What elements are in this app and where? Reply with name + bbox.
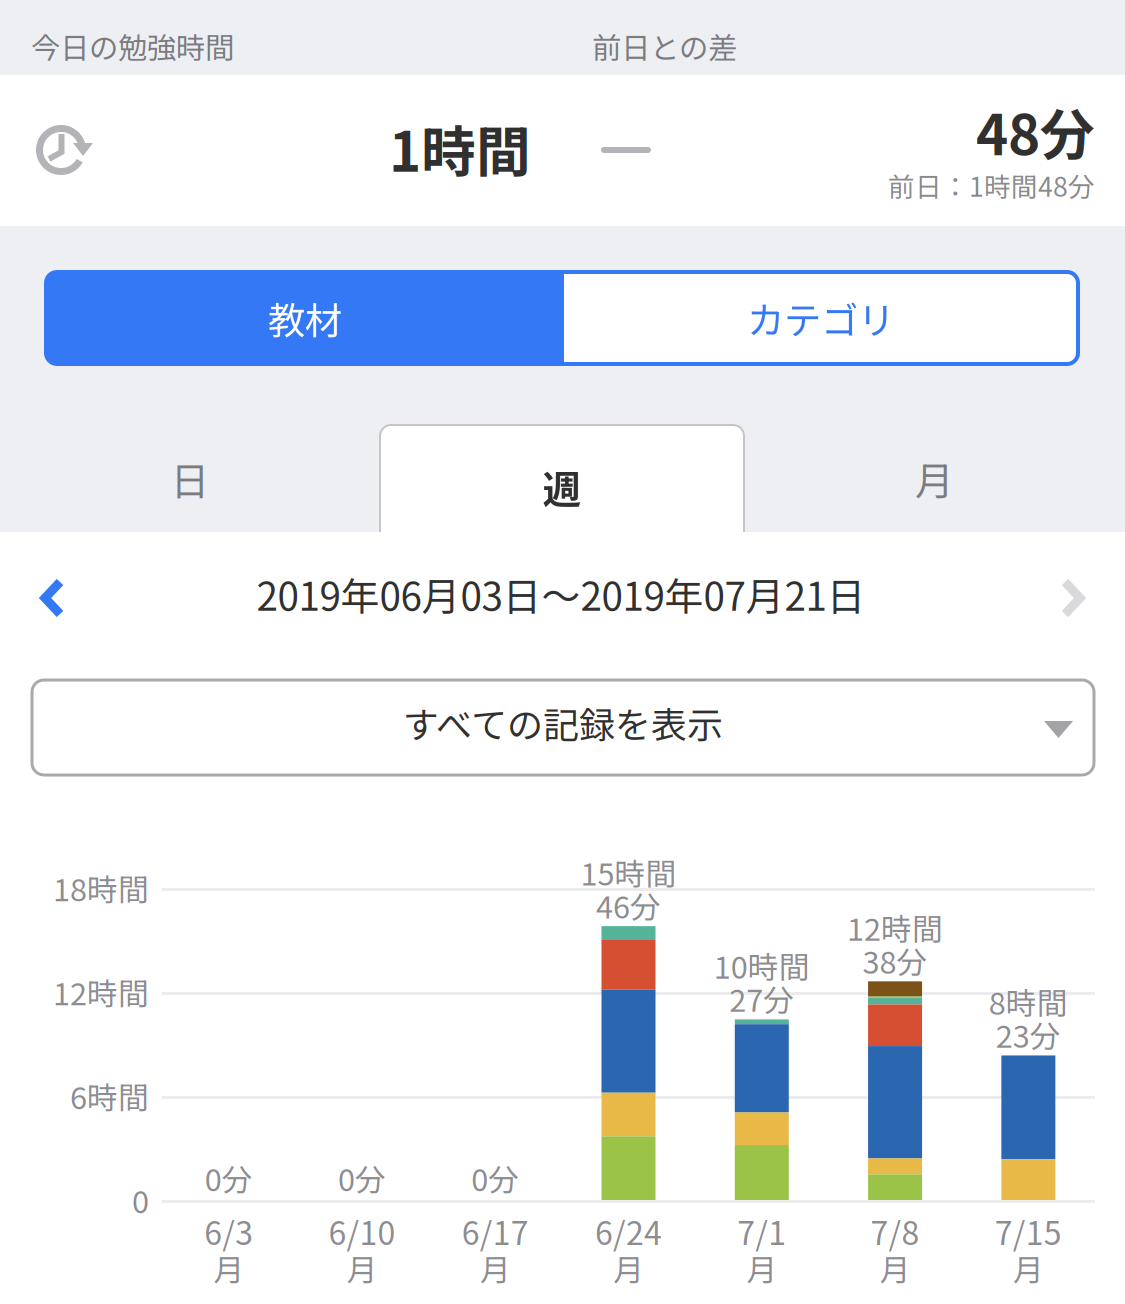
button[interactable]: カテゴリ xyxy=(564,272,1078,364)
staticText: 月 xyxy=(915,450,954,506)
staticText: 0分 xyxy=(471,1156,519,1200)
staticText: 18時間 xyxy=(53,866,149,910)
staticText: 10時間 xyxy=(714,943,810,988)
staticText: 0 xyxy=(132,1178,149,1222)
staticText: 2019年06月03日〜2019年07月21日 xyxy=(256,566,865,622)
staticText: 月 xyxy=(746,1246,777,1290)
staticText: 月 xyxy=(1013,1246,1044,1290)
staticText: 今日の勉強時間 xyxy=(31,25,234,67)
staticText: 46分 xyxy=(596,883,661,927)
staticText: 0分 xyxy=(338,1156,386,1200)
staticText: 1時間 xyxy=(389,108,531,188)
staticText: 38分 xyxy=(863,938,928,982)
staticText: 12時間 xyxy=(53,970,149,1014)
staticText: 48分 xyxy=(976,91,1095,171)
staticText: カテゴリ xyxy=(747,291,895,345)
staticText: 週 xyxy=(542,459,581,515)
staticText: 月 xyxy=(480,1246,511,1290)
button[interactable]: 日 xyxy=(0,425,380,532)
staticText: 7/8 xyxy=(871,1208,920,1254)
staticText: 6時間 xyxy=(70,1074,149,1118)
staticText: 0分 xyxy=(205,1156,253,1200)
staticText: すべての記録を表示 xyxy=(403,696,723,748)
staticText: 8時間 xyxy=(989,979,1068,1024)
staticText: 前日との差 xyxy=(592,25,737,67)
button[interactable]: 次の期間 xyxy=(1026,553,1118,643)
button[interactable]: 教材 xyxy=(46,272,564,364)
staticText: 教材 xyxy=(268,291,342,345)
button[interactable]: すべての記録を表示 xyxy=(32,680,1094,775)
staticText: 7/15 xyxy=(995,1208,1062,1254)
staticText: 6/3 xyxy=(204,1208,253,1254)
staticText: 7/1 xyxy=(737,1208,786,1254)
staticText: 27分 xyxy=(729,976,794,1021)
button[interactable]: 月 xyxy=(744,425,1125,532)
staticText: 月 xyxy=(880,1246,911,1290)
staticText: 前日：1時間48分 xyxy=(888,166,1095,204)
staticText: 月 xyxy=(213,1246,244,1290)
staticText: 月 xyxy=(613,1246,644,1290)
button[interactable]: 前の期間 xyxy=(7,553,99,643)
staticText: 日 xyxy=(170,450,209,506)
button[interactable]: 週 xyxy=(380,425,744,532)
staticText: 23分 xyxy=(996,1012,1061,1057)
staticText: 6/17 xyxy=(462,1208,529,1254)
staticText: 12時間 xyxy=(847,905,943,949)
staticText: 6/10 xyxy=(328,1208,395,1254)
staticText: 15時間 xyxy=(580,850,676,894)
staticText: 月 xyxy=(346,1246,377,1290)
staticText: 6/24 xyxy=(595,1208,662,1254)
